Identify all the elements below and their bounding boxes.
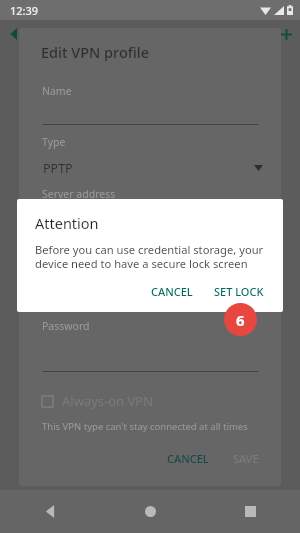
button[interactable]: Home <box>100 490 200 533</box>
button[interactable]: 6 <box>224 303 257 336</box>
staticText: Name <box>42 84 72 98</box>
button[interactable]: Add <box>272 22 300 46</box>
staticText: CANCEL <box>167 451 209 466</box>
button[interactable]: SAVE <box>225 445 267 472</box>
staticText: Before you can use credential storage, y… <box>35 242 269 272</box>
staticText: Password <box>42 319 90 333</box>
staticText: This VPN type can't stay connected at al… <box>42 420 248 433</box>
staticText: SET LOCK <box>214 284 264 299</box>
staticText: 12:39 <box>10 3 39 18</box>
staticText: SAVE <box>233 451 259 466</box>
staticText: Always-on VPN <box>62 392 154 410</box>
button[interactable]: SET LOCK <box>206 279 272 304</box>
staticText: PPTP <box>43 160 73 177</box>
button[interactable]: CANCEL <box>143 279 201 304</box>
staticText: 6 <box>236 310 245 330</box>
button[interactable]: PPTP <box>19 157 281 179</box>
button[interactable]: CANCEL <box>159 445 217 472</box>
button[interactable]: Always-on VPN <box>19 390 281 412</box>
button[interactable]: Back <box>0 490 100 533</box>
button[interactable]: Recent apps <box>200 490 300 533</box>
staticText: Type <box>42 135 66 149</box>
button[interactable]: Navigate up <box>0 22 28 46</box>
staticText: Edit VPN profile <box>41 42 150 62</box>
staticText: CANCEL <box>151 284 193 299</box>
staticText: Attention <box>35 213 99 233</box>
staticText: Server address <box>42 187 116 201</box>
